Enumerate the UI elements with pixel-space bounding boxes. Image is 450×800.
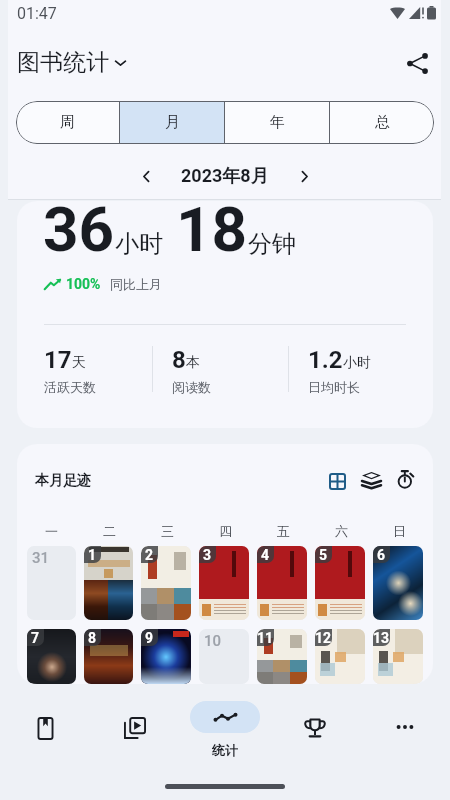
button[interactable]: Media bbox=[90, 684, 180, 764]
staticText: 1.2 bbox=[308, 346, 343, 374]
staticText: 四 bbox=[219, 523, 232, 539]
button[interactable]: 5 bbox=[315, 546, 365, 620]
staticText: 年 bbox=[270, 113, 285, 132]
staticText: 六 bbox=[335, 523, 348, 539]
button[interactable]: Library bbox=[0, 684, 90, 764]
staticText: 2 bbox=[145, 547, 154, 563]
button[interactable]: 总 bbox=[330, 101, 434, 144]
staticText: 总 bbox=[375, 113, 390, 132]
staticText: 分钟 bbox=[248, 229, 296, 259]
staticText: 日 bbox=[393, 523, 406, 539]
button[interactable]: Share bbox=[395, 41, 439, 85]
button[interactable]: Timer bbox=[391, 467, 419, 495]
staticText: 5 bbox=[319, 547, 328, 563]
staticText: 8 bbox=[88, 630, 97, 646]
button[interactable]: 11 bbox=[257, 629, 307, 684]
button[interactable]: 8 bbox=[84, 629, 133, 684]
button[interactable]: 周 bbox=[16, 101, 119, 144]
button[interactable]: 9 bbox=[141, 629, 191, 684]
staticText: 五 bbox=[277, 523, 290, 539]
staticText: 本 bbox=[186, 354, 200, 372]
staticText: 12 bbox=[315, 630, 332, 646]
staticText: 7 bbox=[31, 630, 40, 646]
staticText: 活跃天数 bbox=[44, 379, 96, 395]
staticText: 2023年8月 bbox=[181, 165, 269, 188]
button[interactable]: Grid view bbox=[323, 467, 351, 495]
button[interactable]: Previous month bbox=[129, 159, 163, 193]
button[interactable]: 13 bbox=[373, 629, 423, 684]
staticText: 阅读数 bbox=[172, 379, 211, 395]
button[interactable]: 7 bbox=[27, 629, 76, 684]
button[interactable]: 3 bbox=[199, 546, 249, 620]
staticText: 一 bbox=[45, 523, 58, 539]
button[interactable]: 月 bbox=[120, 101, 224, 144]
staticText: 11 bbox=[257, 630, 274, 646]
staticText: 9 bbox=[145, 630, 154, 646]
button[interactable]: 2 bbox=[141, 546, 191, 620]
staticText: 统计 bbox=[212, 742, 238, 758]
staticText: 天 bbox=[72, 354, 86, 372]
staticText: 图书统计 bbox=[17, 48, 109, 77]
staticText: 3 bbox=[203, 547, 212, 563]
staticText: 月 bbox=[165, 113, 180, 132]
staticText: 8 bbox=[172, 346, 186, 374]
button[interactable]: 12 bbox=[315, 629, 365, 684]
staticText: 1 bbox=[88, 547, 97, 563]
button[interactable]: Layers bbox=[357, 467, 385, 495]
staticText: 10 bbox=[204, 632, 222, 650]
button[interactable]: 图书统计 bbox=[17, 48, 127, 77]
staticText: 日均时长 bbox=[308, 379, 360, 395]
staticText: 同比上月 bbox=[110, 276, 162, 292]
staticText: 4 bbox=[261, 547, 270, 563]
button[interactable]: More bbox=[360, 684, 450, 764]
staticText: 本月足迹 bbox=[35, 472, 91, 490]
staticText: 01:47 bbox=[17, 4, 57, 23]
button[interactable]: 31 bbox=[27, 546, 76, 620]
button[interactable]: 10 bbox=[199, 629, 249, 684]
staticText: 13 bbox=[373, 630, 390, 646]
staticText: 18 bbox=[176, 201, 248, 266]
button[interactable]: Statistics bbox=[180, 684, 270, 764]
staticText: 36 bbox=[43, 201, 115, 266]
staticText: 100% bbox=[66, 276, 101, 292]
button[interactable]: Achievements bbox=[270, 684, 360, 764]
button[interactable]: 1 bbox=[84, 546, 133, 620]
staticText: 17 bbox=[44, 346, 72, 374]
staticText: 小时 bbox=[343, 354, 371, 372]
staticText: 周 bbox=[60, 113, 75, 132]
button[interactable]: 6 bbox=[373, 546, 423, 620]
staticText: 小时 bbox=[115, 229, 163, 259]
staticText: 31 bbox=[32, 549, 50, 567]
staticText: 三 bbox=[161, 523, 174, 539]
staticText: 6 bbox=[377, 547, 386, 563]
staticText: 二 bbox=[103, 523, 116, 539]
button[interactable]: 年 bbox=[225, 101, 329, 144]
button[interactable]: 4 bbox=[257, 546, 307, 620]
button[interactable]: Next month bbox=[287, 159, 321, 193]
